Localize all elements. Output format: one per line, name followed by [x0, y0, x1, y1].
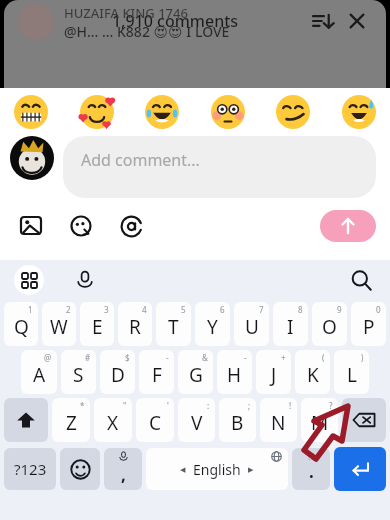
staticText: )	[361, 352, 364, 363]
button[interactable]: Add image	[14, 209, 48, 243]
staticText: 4	[142, 304, 147, 315]
staticText: O	[322, 314, 337, 340]
staticText: K	[307, 362, 319, 388]
staticText: U	[245, 314, 259, 340]
staticText: 1	[28, 304, 33, 315]
button[interactable]: 0	[351, 302, 386, 346]
button[interactable]: $	[100, 350, 135, 394]
button[interactable]: 4	[118, 302, 152, 346]
staticText: 6	[220, 304, 225, 315]
staticText: F	[152, 362, 162, 388]
staticText: ;	[248, 400, 251, 411]
staticText: ▸	[248, 463, 254, 476]
button[interactable]: Add comment...	[63, 136, 376, 198]
button[interactable]: Emoji	[60, 448, 100, 490]
staticText: @	[44, 352, 52, 363]
button[interactable]: 1	[4, 302, 38, 346]
button[interactable]: ;	[219, 398, 256, 442]
button[interactable]	[342, 95, 376, 129]
button[interactable]: "	[94, 398, 132, 442]
staticText: G	[189, 362, 203, 388]
button[interactable]	[145, 95, 179, 129]
button[interactable]: 6	[195, 302, 230, 346]
button[interactable]: &	[178, 350, 213, 394]
staticText: I	[287, 314, 294, 340]
staticText: J	[271, 362, 277, 388]
button[interactable]	[14, 95, 48, 129]
button[interactable]: :	[178, 398, 215, 442]
staticText: Y	[207, 314, 218, 340]
button[interactable]: 2	[42, 302, 76, 346]
button[interactable]: !?	[292, 448, 330, 490]
staticText: H	[227, 362, 242, 388]
staticText: E	[92, 314, 103, 340]
staticText: .	[309, 460, 314, 483]
staticText: P	[363, 314, 375, 340]
button[interactable]: Search	[346, 265, 376, 295]
staticText: ◂	[180, 463, 186, 476]
button[interactable]: Enter	[334, 447, 386, 491]
staticText: English	[193, 460, 241, 479]
staticText: A	[33, 362, 46, 388]
button[interactable]: Toolbar	[14, 265, 44, 295]
staticText: :	[207, 400, 210, 411]
staticText: 9	[337, 304, 342, 315]
button[interactable]	[10, 136, 54, 180]
button[interactable]: Mention	[114, 209, 148, 243]
staticText: ?123	[14, 459, 47, 479]
staticText: ,	[121, 463, 126, 486]
staticText: C	[149, 410, 162, 436]
staticText: 7	[259, 304, 264, 315]
button[interactable]: '	[136, 398, 174, 442]
button[interactable]: -	[217, 350, 252, 394]
button[interactable]: @	[21, 350, 57, 394]
staticText: ?	[329, 400, 333, 411]
button[interactable]: *	[52, 398, 90, 442]
staticText: *	[80, 400, 85, 411]
staticText: W	[50, 314, 68, 340]
button[interactable]: 7	[234, 302, 269, 346]
button[interactable]: Add sticker	[64, 209, 98, 243]
button[interactable]: Close	[340, 4, 374, 38]
staticText: 0	[376, 304, 381, 315]
button[interactable]: #	[61, 350, 96, 394]
button[interactable]: 9	[312, 302, 347, 346]
staticText: @H… … K882 😍😍 I LOVE	[64, 22, 230, 41]
staticText: 2	[66, 304, 71, 315]
button[interactable]: ,	[104, 448, 142, 490]
button[interactable]	[211, 95, 245, 129]
staticText: -	[244, 352, 247, 363]
staticText: 5	[181, 304, 186, 315]
staticText: HUZAIFA KING 1746	[64, 4, 188, 22]
staticText: '	[167, 400, 169, 411]
staticText: !?	[308, 450, 315, 462]
button[interactable]	[276, 95, 310, 129]
button[interactable]: (	[295, 350, 330, 394]
button[interactable]	[80, 95, 114, 129]
staticText: !	[289, 400, 292, 411]
button[interactable]: 8	[273, 302, 308, 346]
staticText: 8	[298, 304, 303, 315]
button[interactable]: !	[260, 398, 297, 442]
button[interactable]: -	[139, 350, 174, 394]
button[interactable]: ?123	[4, 448, 56, 490]
staticText: #	[85, 352, 91, 363]
button[interactable]: Key	[342, 398, 386, 442]
button[interactable]: 5	[156, 302, 191, 346]
button[interactable]: Send	[320, 210, 376, 242]
button[interactable]: ?	[301, 398, 338, 442]
button[interactable]: Sort comments	[306, 4, 340, 38]
staticText: L	[347, 362, 357, 388]
staticText: +	[281, 352, 286, 363]
button[interactable]: )	[334, 350, 369, 394]
button[interactable]: Voice input	[70, 265, 100, 295]
button[interactable]: 3	[80, 302, 114, 346]
button[interactable]: ◂	[146, 448, 288, 490]
staticText: Q	[14, 314, 29, 340]
staticText: $	[125, 352, 130, 363]
button[interactable]: Key	[4, 398, 48, 442]
staticText: N	[271, 410, 286, 436]
staticText: 3	[104, 304, 109, 315]
staticText: X	[107, 410, 119, 436]
button[interactable]: +	[256, 350, 291, 394]
